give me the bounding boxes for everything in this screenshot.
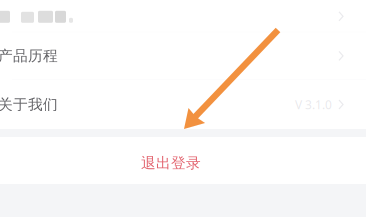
staticText: 退出登录 <box>141 154 201 172</box>
staticText: 关于我们 <box>0 95 58 113</box>
button[interactable]: 关于我们 <box>0 80 366 129</box>
staticText: V 3.1.0 <box>295 96 332 112</box>
staticText: 产品历程 <box>0 47 58 65</box>
button[interactable]: 账号设置 <box>0 1 366 32</box>
button[interactable]: 产品历程 <box>0 32 366 79</box>
button[interactable]: 退出登录 <box>0 137 366 184</box>
